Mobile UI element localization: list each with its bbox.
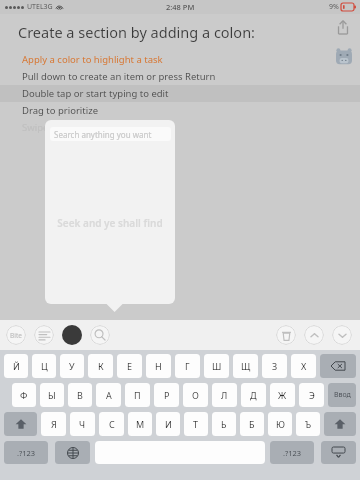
button[interactable]: Э [299, 383, 324, 407]
button[interactable]: Ю [268, 412, 292, 436]
button[interactable]: Д [241, 383, 266, 407]
staticText: Apply a color to highlight a task [22, 53, 163, 66]
button[interactable]: У [60, 354, 84, 378]
staticText: Й [13, 360, 20, 372]
staticText: С [109, 418, 115, 430]
button[interactable]: Search anything you want [50, 127, 171, 141]
button[interactable]: Share [332, 16, 354, 38]
staticText: Drag to prioritize [22, 104, 99, 117]
button[interactable]: Next [332, 325, 352, 345]
staticText: Л [221, 389, 228, 401]
button[interactable]: Ч [70, 412, 95, 436]
button[interactable]: Ъ [296, 412, 320, 436]
button[interactable]: И [156, 412, 180, 436]
staticText: Ш [212, 360, 222, 372]
staticText: Щ [241, 360, 251, 372]
staticText: Е [127, 360, 133, 372]
staticText: Х [301, 360, 307, 372]
button[interactable]: Previous [304, 325, 324, 345]
staticText: .?123 [283, 448, 302, 458]
staticText: .?123 [17, 448, 36, 458]
staticText: М [136, 418, 145, 430]
button[interactable]: Backspace [320, 354, 356, 378]
button[interactable]: Н [146, 354, 171, 378]
button[interactable]: К [88, 354, 113, 378]
staticText: Ф [20, 389, 28, 401]
button[interactable]: Bite [6, 325, 26, 345]
button[interactable]: Numbers [270, 441, 314, 464]
button[interactable]: А [96, 383, 121, 407]
staticText: Seek and ye shall find [45, 216, 175, 230]
button[interactable]: Л [212, 383, 237, 407]
staticText: Ь [221, 418, 227, 430]
staticText: А [106, 389, 112, 401]
button[interactable]: Record [62, 325, 82, 345]
staticText: Д [250, 389, 257, 401]
staticText: Э [309, 389, 315, 401]
staticText: Ъ [305, 418, 312, 430]
button[interactable]: Shift [324, 412, 356, 436]
staticText: Н [155, 360, 162, 372]
staticText: И [165, 418, 172, 430]
button[interactable]: Enter [328, 383, 356, 407]
staticText: П [134, 389, 141, 401]
button[interactable]: Ы [40, 383, 64, 407]
staticText: Search anything you want [54, 129, 152, 140]
button[interactable]: П [125, 383, 150, 407]
staticText: Double tap or start typing to edit [22, 87, 169, 100]
staticText: У [69, 360, 75, 372]
staticText: Ч [79, 418, 86, 430]
button[interactable]: Numbers [4, 441, 48, 464]
button[interactable]: Swipe to mark as done [0, 119, 360, 136]
staticText: Я [51, 418, 57, 430]
staticText: З [272, 360, 278, 372]
staticText: Pull down to create an item or press Ret… [22, 70, 216, 83]
button[interactable]: Pull down to create an item or press Ret… [0, 68, 360, 85]
button[interactable]: Drag to prioritize [0, 102, 360, 119]
button[interactable]: В [68, 383, 92, 407]
button[interactable]: Search [90, 325, 110, 345]
button[interactable]: List [34, 325, 54, 345]
staticText: 2:48 PM [166, 2, 195, 12]
button[interactable]: Ж [270, 383, 295, 407]
button[interactable]: О [183, 383, 208, 407]
button[interactable]: Г [175, 354, 200, 378]
staticText: Ц [41, 360, 48, 372]
staticText: Б [249, 418, 255, 430]
button[interactable]: Т [184, 412, 208, 436]
staticText: Create a section by adding a colon: [18, 22, 255, 42]
button[interactable]: Х [291, 354, 316, 378]
button[interactable]: Avatar [333, 46, 355, 68]
button[interactable]: Ц [32, 354, 56, 378]
button[interactable]: Ь [212, 412, 236, 436]
button[interactable]: Б [240, 412, 264, 436]
staticText: Ж [278, 389, 287, 401]
staticText: В [77, 389, 83, 401]
staticText: Swipe to mark as done [22, 121, 124, 134]
button[interactable]: Delete [276, 325, 296, 345]
button[interactable]: С [99, 412, 124, 436]
button[interactable]: З [262, 354, 287, 378]
button[interactable]: Й [4, 354, 28, 378]
staticText: Ы [48, 389, 56, 401]
staticText: О [192, 389, 199, 401]
button[interactable]: Р [154, 383, 179, 407]
button[interactable]: Ш [204, 354, 229, 378]
staticText: UTEL3G [27, 2, 53, 12]
button[interactable]: Double tap or start typing to edit [0, 85, 360, 102]
button[interactable]: Я [41, 412, 66, 436]
staticText: Ю [276, 418, 285, 430]
button[interactable]: Language [55, 441, 90, 464]
button[interactable]: Ф [12, 383, 36, 407]
button[interactable]: Apply a color to highlight a task [0, 51, 360, 68]
button[interactable]: М [128, 412, 152, 436]
button[interactable]: Shift [4, 412, 37, 436]
button[interactable]: Щ [233, 354, 258, 378]
staticText: Bite [10, 331, 22, 340]
button[interactable]: Е [117, 354, 142, 378]
staticText: Р [164, 389, 170, 401]
staticText: Г [185, 360, 190, 372]
button[interactable]: Hide keyboard [321, 441, 356, 464]
staticText: К [98, 360, 104, 372]
